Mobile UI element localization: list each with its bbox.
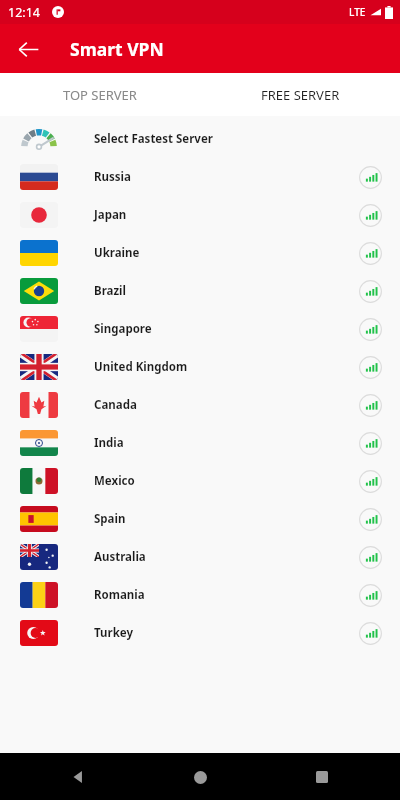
button[interactable]: United Kingdom — [0, 348, 400, 386]
button[interactable]: Back — [8, 29, 48, 69]
button[interactable]: Brazil — [0, 272, 400, 310]
button[interactable]: India — [0, 424, 400, 462]
button[interactable]: Romania — [0, 576, 400, 614]
button[interactable]: Home — [184, 761, 216, 793]
staticText: Singapore — [94, 321, 359, 337]
staticText: Ukraine — [94, 245, 359, 261]
staticText: Spain — [94, 511, 359, 527]
button[interactable]: Spain — [0, 500, 400, 538]
staticText: India — [94, 435, 359, 451]
staticText: Russia — [94, 169, 359, 185]
button[interactable]: Select Fastest Server — [0, 120, 400, 158]
staticText: Select Fastest Server — [94, 131, 359, 147]
staticText: Turkey — [94, 625, 359, 641]
button[interactable]: Canada — [0, 386, 400, 424]
button[interactable]: Australia — [0, 538, 400, 576]
staticText: Romania — [94, 587, 359, 603]
staticText: Japan — [94, 207, 359, 223]
staticText: Australia — [94, 549, 359, 565]
staticText: Mexico — [94, 473, 359, 489]
button[interactable]: Ukraine — [0, 234, 400, 272]
staticText: FREE SERVER — [261, 86, 340, 104]
button[interactable]: Turkey — [0, 614, 400, 652]
staticText: Smart VPN — [70, 37, 164, 61]
button[interactable]: Back — [62, 761, 94, 793]
button[interactable]: Japan — [0, 196, 400, 234]
button[interactable]: Russia — [0, 158, 400, 196]
staticText: 12:14 — [8, 4, 40, 21]
staticText: LTE — [349, 5, 366, 19]
button[interactable]: FREE SERVER — [200, 73, 400, 116]
staticText: TOP SERVER — [63, 86, 137, 104]
button[interactable]: TOP SERVER — [0, 73, 200, 116]
button[interactable]: Mexico — [0, 462, 400, 500]
staticText: United Kingdom — [94, 359, 359, 375]
staticText: Brazil — [94, 283, 359, 299]
button[interactable]: Singapore — [0, 310, 400, 348]
staticText: Canada — [94, 397, 359, 413]
button[interactable]: Recents — [306, 761, 338, 793]
